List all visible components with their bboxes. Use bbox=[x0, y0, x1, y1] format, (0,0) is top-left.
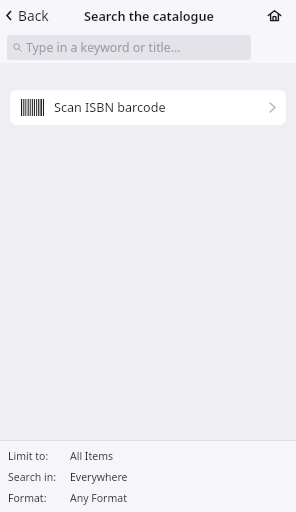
staticText: Search in: bbox=[8, 470, 70, 484]
staticText: Type in a keyword or title... bbox=[26, 39, 181, 56]
button[interactable]: Home bbox=[256, 4, 296, 27]
staticText: All Items bbox=[70, 449, 113, 463]
button[interactable]: Format: bbox=[0, 487, 296, 508]
staticText: Everywhere bbox=[70, 470, 128, 484]
button[interactable]: Back bbox=[0, 2, 57, 29]
staticText: Scan ISBN barcode bbox=[54, 99, 166, 116]
button[interactable]: Scan ISBN barcode bbox=[10, 90, 286, 125]
staticText: Format: bbox=[8, 491, 70, 505]
staticText: Search the catalogue bbox=[84, 7, 215, 24]
staticText: Any Format bbox=[70, 491, 127, 505]
staticText: Back bbox=[18, 6, 49, 25]
button[interactable]: Search in: bbox=[0, 466, 296, 487]
button[interactable]: Limit to: bbox=[0, 445, 296, 466]
staticText: Limit to: bbox=[8, 449, 70, 463]
button[interactable]: Type in a keyword or title... bbox=[7, 35, 251, 60]
